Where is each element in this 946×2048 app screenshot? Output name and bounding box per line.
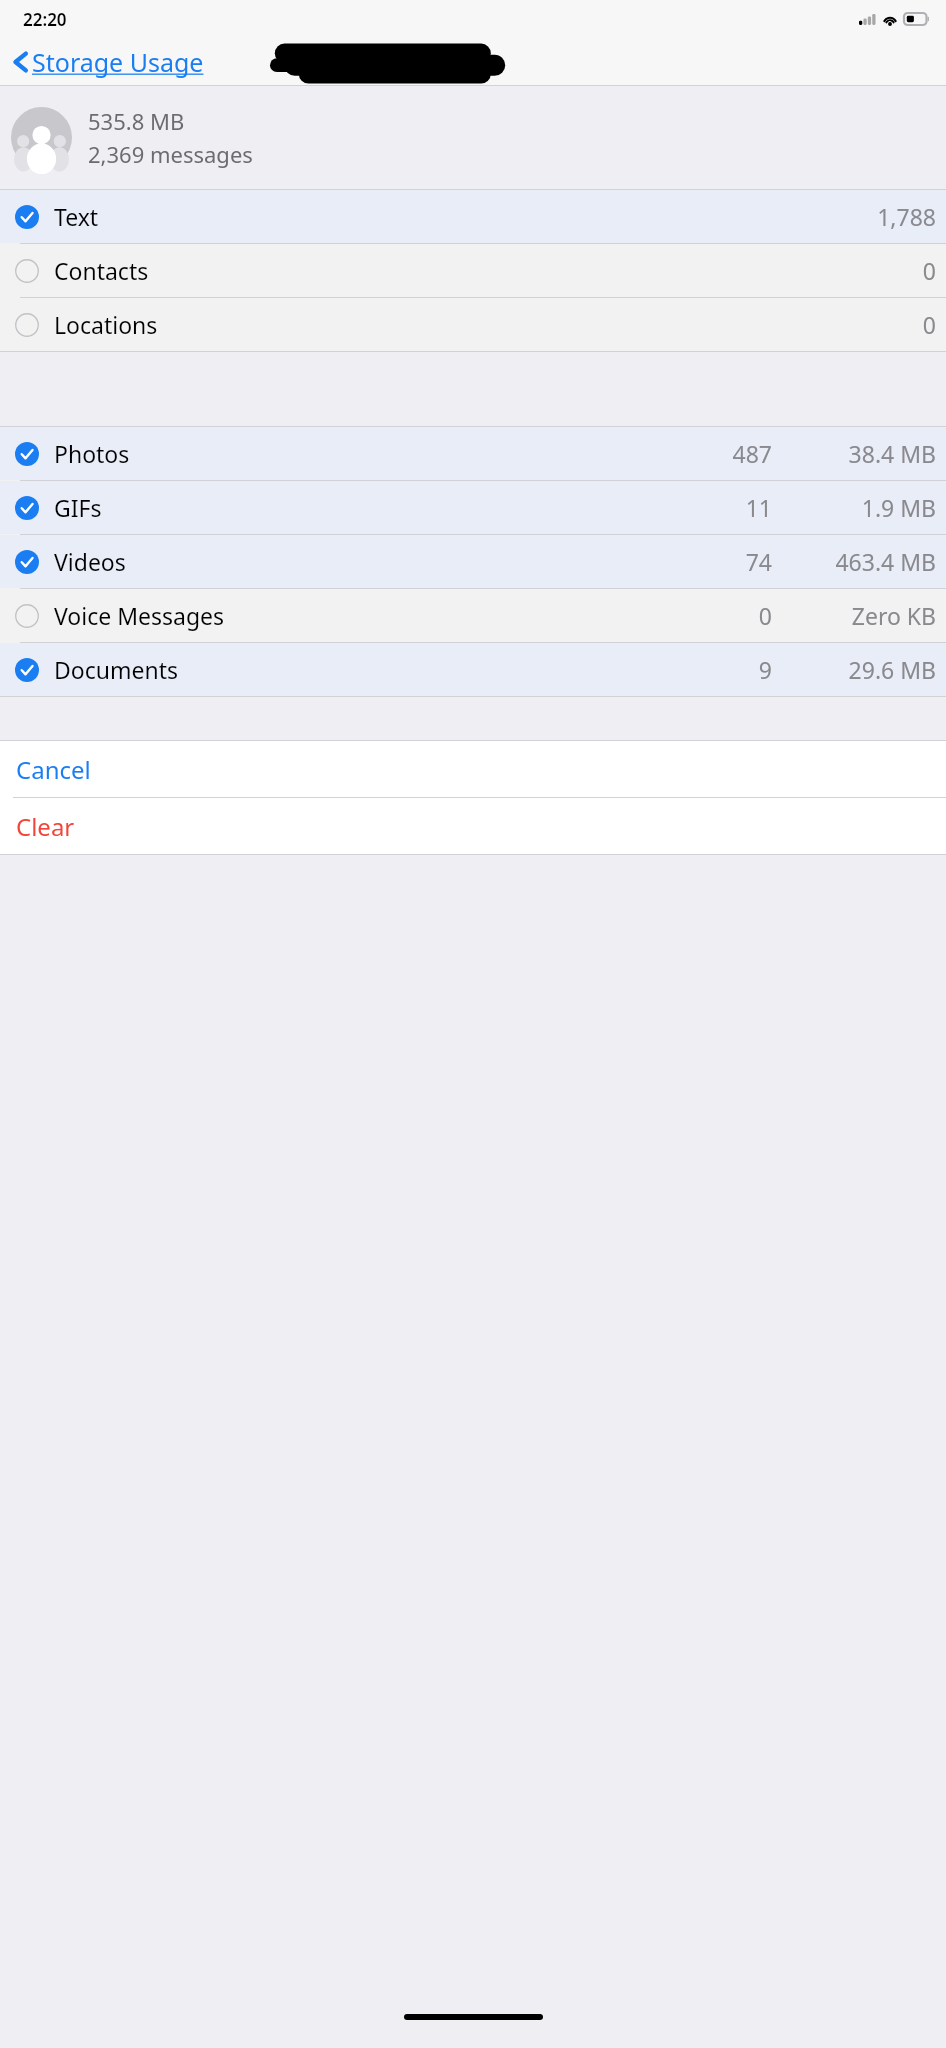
staticText: 74	[664, 546, 772, 577]
button[interactable]: GIFs	[0, 481, 946, 534]
button[interactable]: Contacts	[0, 244, 946, 297]
staticText: GIFs	[54, 492, 664, 523]
staticText: 463.4 MB	[786, 546, 936, 577]
staticText: 0	[696, 255, 936, 286]
staticText: Storage Usage	[32, 45, 204, 79]
staticText: Contacts	[54, 255, 696, 286]
staticText: 1.9 MB	[786, 492, 936, 523]
staticText: 9	[664, 654, 772, 685]
staticText: Cancel	[16, 753, 91, 786]
button[interactable]: Text	[0, 190, 946, 243]
staticText: 11	[664, 492, 772, 523]
staticText: Zero KB	[786, 600, 936, 631]
staticText: 22:20	[23, 8, 67, 31]
staticText: 2,369 messages	[88, 139, 253, 169]
staticText: 535.8 MB	[88, 106, 185, 136]
staticText: 487	[664, 438, 772, 469]
staticText: 1,788	[696, 201, 936, 232]
staticText: 0	[664, 600, 772, 631]
staticText: 29.6 MB	[786, 654, 936, 685]
button[interactable]: Photos	[0, 427, 946, 480]
staticText: 38.4 MB	[786, 438, 936, 469]
button[interactable]: Locations	[0, 298, 946, 351]
staticText: Videos	[54, 546, 664, 577]
staticText: 0	[696, 309, 936, 340]
other: Back	[10, 47, 32, 77]
button[interactable]: Cancel	[0, 741, 946, 797]
staticText: Documents	[54, 654, 664, 685]
staticText: Voice Messages	[54, 600, 664, 631]
button[interactable]: Clear	[0, 798, 946, 854]
button[interactable]: Videos	[0, 535, 946, 588]
staticText: Clear	[16, 810, 75, 843]
button[interactable]: Voice Messages	[0, 589, 946, 642]
staticText: Locations	[54, 309, 696, 340]
staticText: Photos	[54, 438, 664, 469]
button[interactable]: Back	[10, 45, 204, 79]
button[interactable]: Documents	[0, 643, 946, 696]
staticText: Text	[54, 201, 696, 232]
